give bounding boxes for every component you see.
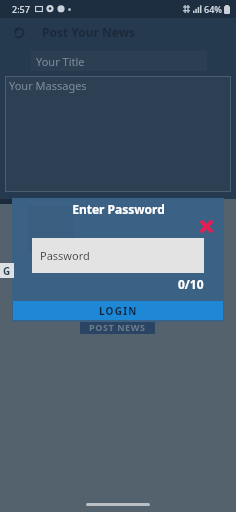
button[interactable]: Your Title bbox=[31, 51, 207, 71]
staticText: Enter Password bbox=[72, 201, 165, 217]
button[interactable]: Back bbox=[8, 21, 30, 43]
staticText: Password bbox=[40, 248, 90, 263]
button[interactable]: Close bbox=[196, 216, 216, 236]
staticText: 0/10 bbox=[178, 276, 204, 292]
staticText: Your Title bbox=[36, 54, 85, 69]
staticText: 64% bbox=[204, 3, 222, 15]
staticText: POST NEWS bbox=[89, 321, 146, 333]
button[interactable]: Password bbox=[32, 238, 204, 273]
button[interactable]: LOGIN bbox=[13, 301, 223, 320]
staticText: Post Your News bbox=[42, 24, 135, 40]
button[interactable]: POST NEWS bbox=[80, 320, 155, 334]
staticText: Your Massages bbox=[9, 78, 87, 93]
staticText: LOGIN bbox=[99, 304, 138, 318]
staticText: G bbox=[3, 264, 11, 278]
button[interactable]: Your Massages bbox=[6, 77, 230, 191]
staticText: 2:57 bbox=[12, 3, 30, 15]
